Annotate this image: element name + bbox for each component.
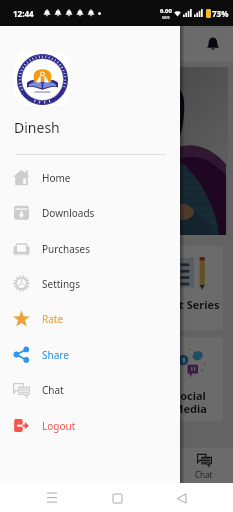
button[interactable]: Recents [40,486,64,510]
button[interactable]: Home [0,160,180,195]
button[interactable]: Back [169,486,193,510]
staticText: Social Media [173,388,207,416]
button[interactable]: Share [0,337,180,372]
button[interactable]: Rate [0,301,180,336]
staticText: KB/S [162,15,170,20]
button[interactable]: Chat [0,372,180,407]
button[interactable]: Downloads [0,195,180,230]
staticText: Dinesh [14,118,60,137]
staticText: 6.00 [160,7,172,15]
button[interactable]: Social Media [157,337,223,421]
button[interactable]: Settings [0,266,180,301]
button[interactable]: Notifications [201,32,225,56]
staticText: Settings [42,277,81,291]
button[interactable]: Logout [0,408,180,443]
staticText: Chat [42,383,64,397]
staticText: Share [42,348,69,362]
staticText: Rate [42,312,64,326]
button[interactable]: Test Series [157,246,223,330]
staticText: 73% [212,8,229,19]
staticText: Chat [195,469,213,480]
staticText: Home [42,171,71,185]
staticText: Test Series [161,297,220,312]
button[interactable]: Chat [175,452,233,480]
staticText: Logout [42,419,76,433]
button[interactable]: Purchases [0,231,180,266]
staticText: Downloads [42,206,95,220]
staticText: 12:44 [13,8,34,19]
staticText: Purchases [42,242,90,256]
button[interactable]: Home [105,486,129,510]
